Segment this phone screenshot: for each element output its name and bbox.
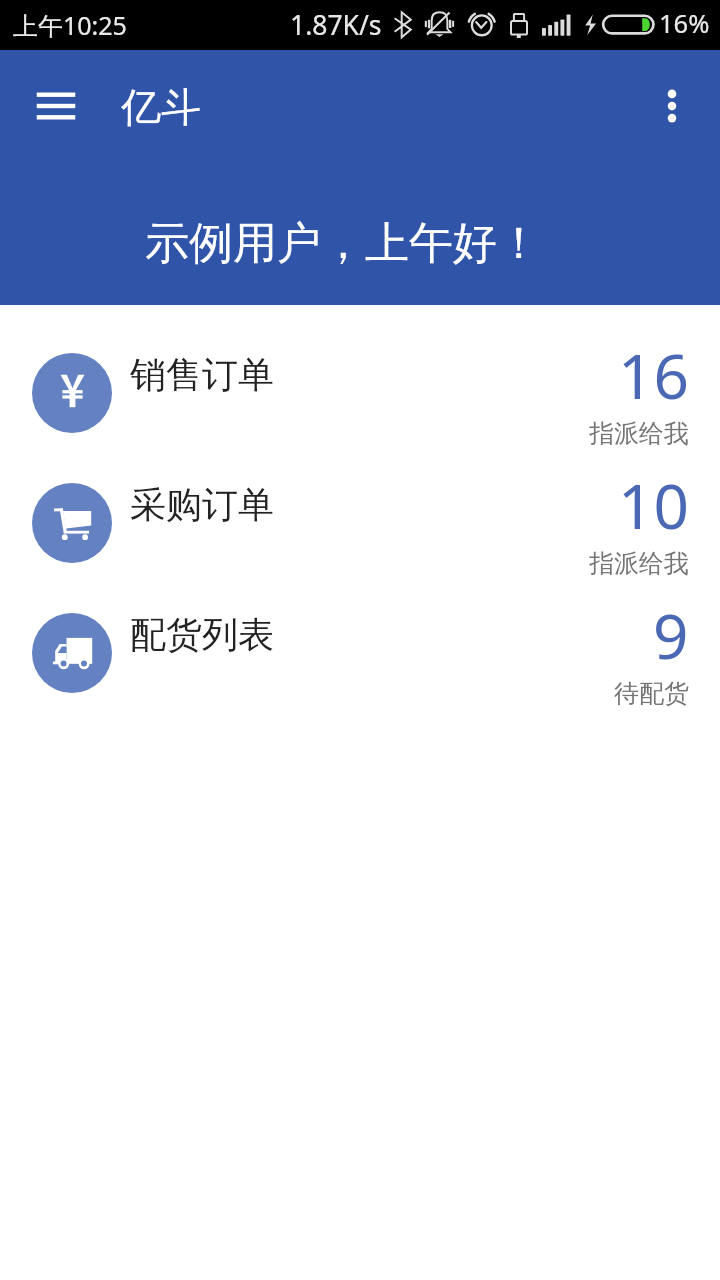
staticText: 采购订单 xyxy=(130,482,274,527)
staticText: 16 xyxy=(618,333,689,417)
staticText: 示例用户，上午好！ xyxy=(145,216,541,271)
button[interactable]: 配货列表 xyxy=(0,588,720,718)
button[interactable]: Open navigation menu xyxy=(21,71,91,141)
staticText: 1.87K/s xyxy=(290,7,382,43)
staticText: 待配货 xyxy=(614,678,689,709)
staticText: 指派给我 xyxy=(589,548,689,579)
button[interactable]: More options xyxy=(644,78,700,134)
button[interactable]: 采购订单 xyxy=(0,458,720,588)
staticText: 亿斗 xyxy=(121,82,201,132)
staticText: 16% xyxy=(659,6,710,41)
staticText: 指派给我 xyxy=(589,418,689,449)
button[interactable]: 销售订单 xyxy=(0,328,720,458)
staticText: 上午10:25 xyxy=(13,8,127,42)
staticText: 9 xyxy=(653,593,689,677)
staticText: 10 xyxy=(618,463,689,547)
staticText: 销售订单 xyxy=(130,352,274,397)
staticText: 配货列表 xyxy=(130,612,274,657)
